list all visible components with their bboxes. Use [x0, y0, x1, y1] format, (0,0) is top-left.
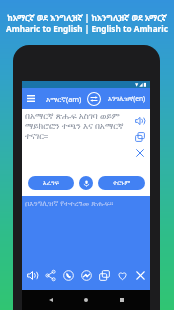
button[interactable]: እንግሊዝኛ(en) [104, 88, 148, 109]
button[interactable]: Home [79, 293, 93, 307]
staticText: አማርኛ(am) [46, 94, 82, 104]
button[interactable]: Back [44, 293, 58, 307]
button[interactable]: Share [41, 266, 59, 284]
button[interactable]: አራግፍ [28, 176, 74, 190]
staticText: እንግሊዝኛ(en) [108, 94, 145, 103]
button[interactable]: Copy [95, 266, 113, 284]
button[interactable]: Recents [115, 293, 129, 307]
staticText: ከአማርኛ ወደ እንግሊዝኛ | ከእንግሊዝኛ ወደ አማርኛ [7, 12, 167, 23]
button[interactable]: Messenger [77, 266, 95, 284]
button[interactable]: Favorite [113, 266, 131, 284]
button[interactable]: Clear [132, 145, 148, 161]
button[interactable]: Speak [132, 113, 148, 129]
button[interactable]: አማርኛ(am) [39, 88, 89, 109]
staticText: በአማርኛ ጽሑፍ አስገባ ወይም ማይክሮፎን ተጫን እና በአማርኛ ተ… [25, 110, 128, 140]
staticText: ተርጉም [113, 180, 131, 186]
staticText: አራግፍ [43, 180, 59, 186]
staticText: Amharic to English | English to Amharic [6, 23, 168, 34]
button[interactable]: Menu [24, 88, 38, 109]
button[interactable]: Close [131, 266, 149, 284]
button[interactable]: ተርጉም [98, 176, 145, 190]
button[interactable]: Copy [132, 129, 148, 145]
staticText: በእንግሊዝኛ የተተረጎመ ጽሑፍ። [25, 198, 114, 208]
button[interactable]: Speak [23, 266, 41, 284]
button[interactable]: WhatsApp [59, 266, 77, 284]
button[interactable]: Microphone [79, 176, 93, 190]
button[interactable]: Swap languages [86, 88, 101, 109]
